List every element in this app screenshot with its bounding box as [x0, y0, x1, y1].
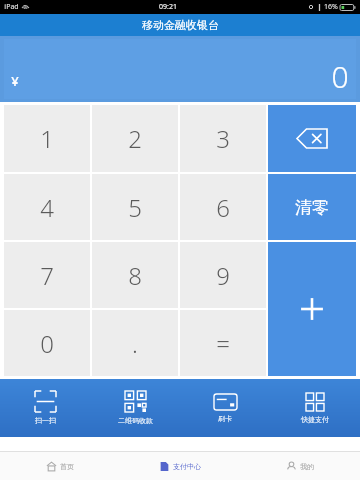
button[interactable]: 首页	[0, 452, 120, 480]
staticText: 清零	[295, 197, 329, 218]
button[interactable]: 2	[92, 105, 178, 172]
staticText: 16%	[324, 2, 338, 12]
button[interactable]: 4	[4, 174, 90, 240]
button[interactable]: Backspace	[268, 105, 356, 172]
staticText: 刷卡	[218, 414, 232, 423]
staticText: iPad	[4, 2, 19, 12]
button[interactable]: 7	[4, 242, 90, 308]
button[interactable]: 清零	[268, 174, 356, 240]
staticText: .	[132, 327, 138, 360]
staticText: 09:21	[159, 2, 177, 12]
staticText: 扫一扫	[35, 416, 56, 425]
staticText: 二维码收款	[118, 416, 153, 425]
button[interactable]: 1	[4, 105, 90, 172]
button[interactable]: 5	[92, 174, 178, 240]
staticText: 3	[216, 122, 230, 155]
staticText: =	[216, 327, 230, 360]
staticText: 2	[128, 122, 142, 155]
button[interactable]: 刷卡	[180, 379, 270, 437]
staticText: 5	[128, 191, 142, 224]
button[interactable]: 支付中心	[120, 452, 240, 480]
staticText: 0	[40, 327, 54, 360]
staticText: 4	[40, 191, 54, 224]
button[interactable]: 快捷支付	[270, 379, 360, 437]
staticText: 8	[128, 259, 142, 292]
staticText: ¥	[11, 72, 19, 90]
button[interactable]: 二维码收款	[90, 379, 180, 437]
button[interactable]: 我的	[240, 452, 360, 480]
button[interactable]: Add	[268, 242, 356, 376]
button[interactable]: 9	[180, 242, 266, 308]
button[interactable]: .	[92, 310, 178, 376]
button[interactable]: 8	[92, 242, 178, 308]
staticText: 支付中心	[173, 462, 201, 471]
button[interactable]: 扫一扫	[0, 379, 90, 437]
staticText: 移动金融收银台	[142, 18, 219, 32]
button[interactable]: 6	[180, 174, 266, 240]
staticText: 1	[40, 122, 54, 155]
staticText: 0	[331, 56, 349, 97]
staticText: 首页	[60, 462, 74, 471]
staticText: 7	[40, 259, 54, 292]
staticText: 我的	[300, 462, 314, 471]
staticText: 快捷支付	[301, 415, 329, 424]
staticText: 6	[216, 191, 230, 224]
button[interactable]: 3	[180, 105, 266, 172]
button[interactable]: =	[180, 310, 266, 376]
button[interactable]: 0	[4, 310, 90, 376]
staticText: 9	[216, 259, 230, 292]
